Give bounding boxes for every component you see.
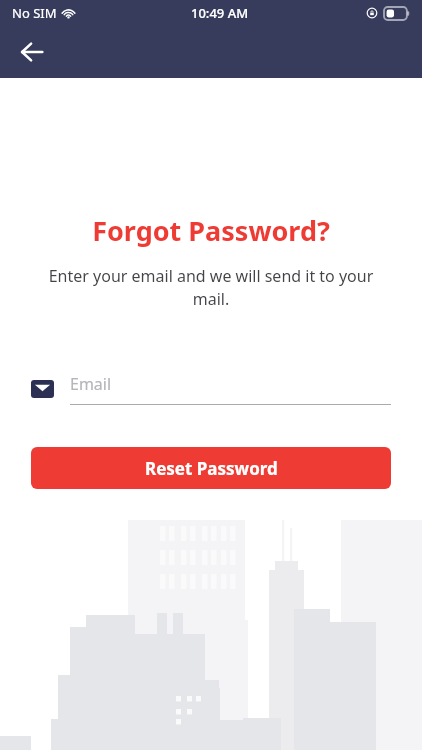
button[interactable]: Email <box>31 368 391 410</box>
staticText: Forgot Password? <box>0 212 422 249</box>
button[interactable]: Back <box>8 28 56 76</box>
staticText: 10:49 AM <box>191 4 249 22</box>
staticText: Enter your email and we will send it to … <box>42 265 380 310</box>
staticText: Email <box>70 373 112 395</box>
button[interactable]: Reset Password <box>31 447 391 489</box>
staticText: No SIM <box>12 4 57 22</box>
staticText: Reset Password <box>145 457 278 480</box>
